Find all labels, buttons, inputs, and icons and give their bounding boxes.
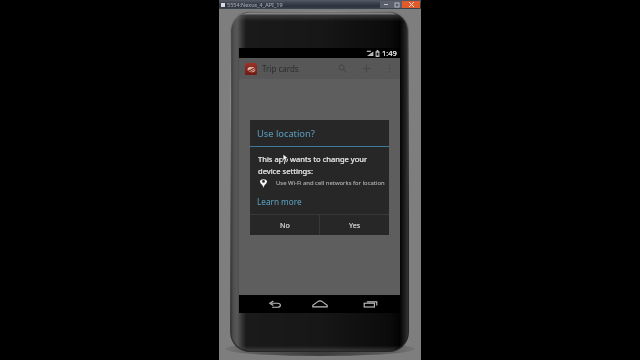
staticText: Yes xyxy=(349,220,361,230)
button[interactable]: Back xyxy=(265,295,285,313)
button[interactable]: Minimize xyxy=(380,1,391,8)
button[interactable]: Recent apps xyxy=(360,295,380,313)
staticText: Trip cards xyxy=(262,63,299,74)
button[interactable]: Maximize xyxy=(391,1,402,8)
staticText: Use Wi-Fi and cell networks for location xyxy=(276,179,385,187)
staticText: 5554:Nexus_4_API_19 xyxy=(227,1,283,8)
staticText: This app wants to change your xyxy=(258,154,368,164)
button[interactable]: Close xyxy=(402,1,420,8)
staticText: 1:49 xyxy=(382,48,397,58)
staticText: Use location? xyxy=(257,127,315,140)
staticText: Learn more xyxy=(257,196,302,207)
button[interactable]: Learn more xyxy=(250,195,310,208)
button[interactable]: Yes xyxy=(320,215,389,235)
button[interactable]: Home xyxy=(310,295,330,313)
staticText: device settings: xyxy=(258,166,313,176)
button[interactable]: No xyxy=(250,215,319,235)
staticText: No xyxy=(280,220,290,230)
